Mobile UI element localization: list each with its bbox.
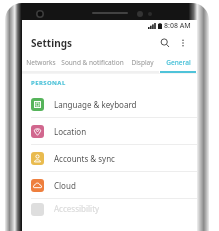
staticText: Networks [26, 58, 56, 67]
staticText: Language & keyboard [54, 99, 137, 110]
staticText: Settings [31, 36, 72, 50]
button[interactable]: Networks [22, 54, 60, 71]
staticText: General [166, 58, 191, 67]
button[interactable]: Display [125, 54, 159, 71]
button[interactable]: Sound & notification [60, 54, 125, 71]
button[interactable]: Accounts & sync [22, 145, 197, 171]
button[interactable]: Language & keyboard [22, 91, 197, 117]
button[interactable]: General [159, 54, 197, 71]
button[interactable]: Cloud [22, 172, 197, 198]
button[interactable]: Location [22, 118, 197, 144]
button[interactable]: More options [176, 36, 190, 50]
button[interactable]: Accessibility [22, 199, 197, 217]
staticText: PERSONAL [31, 79, 66, 87]
staticText: Sound & notification [61, 58, 124, 67]
staticText: Accounts & sync [54, 153, 115, 164]
staticText: Accessibility [54, 203, 100, 214]
staticText: Display [131, 58, 154, 67]
button[interactable]: Search [157, 35, 173, 51]
staticText: 8:08 AM [164, 21, 191, 31]
staticText: Cloud [54, 180, 76, 191]
staticText: Location [54, 126, 87, 137]
